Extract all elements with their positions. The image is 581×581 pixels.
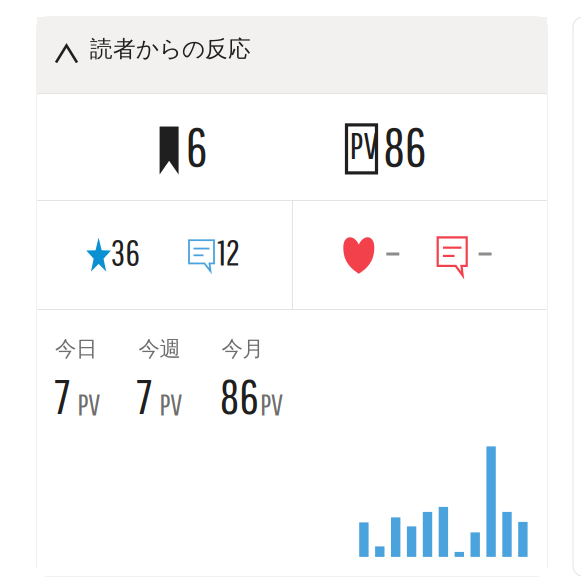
staticText: 12 xyxy=(217,231,239,273)
staticText: PV xyxy=(77,386,100,421)
staticText: PV xyxy=(349,123,378,166)
staticText: 今日 xyxy=(55,336,97,362)
staticText: PV xyxy=(159,386,182,421)
staticText: 7 xyxy=(136,368,152,423)
staticText: 36 xyxy=(110,231,140,273)
staticText: 今月 xyxy=(221,336,263,362)
staticText: 6 xyxy=(186,115,208,177)
staticText: 86 xyxy=(220,368,259,423)
staticText: 今週 xyxy=(138,336,180,362)
staticText: PV xyxy=(260,386,283,421)
staticText: 7 xyxy=(54,368,70,423)
staticText: 86 xyxy=(383,115,427,177)
staticText: 読者からの反応 xyxy=(90,35,251,63)
button[interactable]: 読者からの反応 xyxy=(37,17,547,93)
